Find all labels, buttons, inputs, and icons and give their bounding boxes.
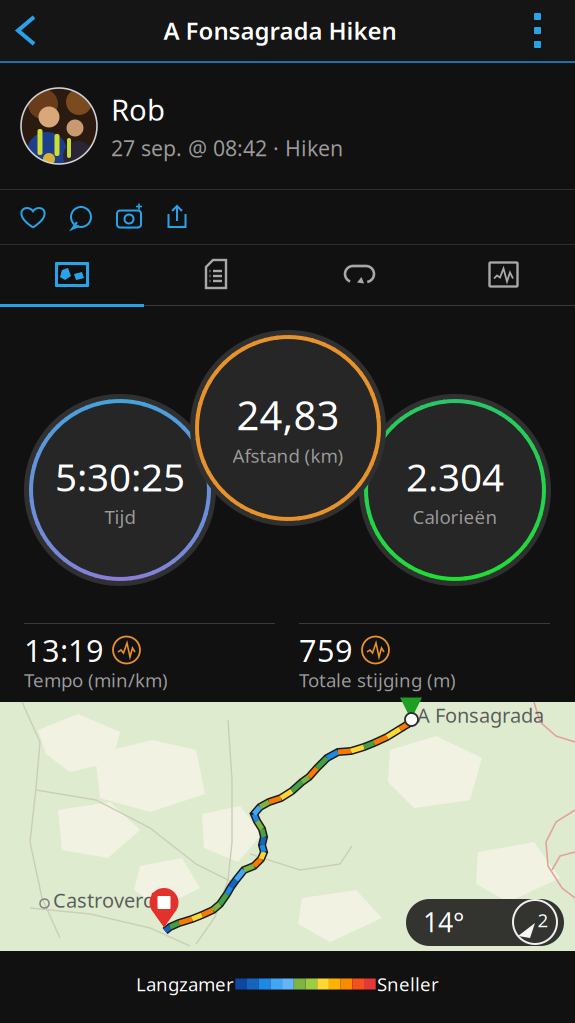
staticText: 27 sep. @ 08:42 · Hiken — [111, 134, 343, 162]
staticText: 759 — [299, 630, 353, 670]
staticText: Sneller — [377, 972, 439, 996]
button[interactable]: Charts — [432, 246, 575, 303]
staticText: 2 — [537, 908, 548, 932]
staticText: Afstand (km) — [232, 443, 343, 468]
staticText: 24,83 — [236, 388, 339, 441]
button[interactable]: Like — [9, 190, 57, 244]
staticText: 13:19 — [24, 630, 104, 670]
staticText: Totale stijging (m) — [299, 668, 456, 692]
staticText: A Fonsagrada Hiken — [163, 15, 396, 46]
button[interactable]: Details — [144, 246, 288, 303]
button[interactable]: Map — [0, 246, 144, 303]
button[interactable]: Back — [0, 0, 60, 61]
staticText: A Fonsagrada — [417, 702, 544, 728]
staticText: Rob — [111, 90, 165, 129]
staticText: Castroverde — [53, 887, 166, 913]
button[interactable]: More options — [500, 0, 575, 61]
staticText: Langzamer — [136, 972, 234, 996]
button[interactable]: Comment — [57, 190, 105, 244]
button[interactable]: Laps — [288, 246, 432, 303]
button[interactable]: Share — [153, 190, 201, 244]
staticText: Tempo (min/km) — [24, 668, 168, 692]
staticText: 5:30:25 — [55, 451, 185, 502]
staticText: Calorieën — [412, 504, 497, 529]
staticText: 14° — [423, 904, 464, 940]
staticText: 2.304 — [406, 451, 504, 502]
staticText: Tijd — [104, 504, 135, 529]
button[interactable]: Add photo — [105, 190, 153, 244]
